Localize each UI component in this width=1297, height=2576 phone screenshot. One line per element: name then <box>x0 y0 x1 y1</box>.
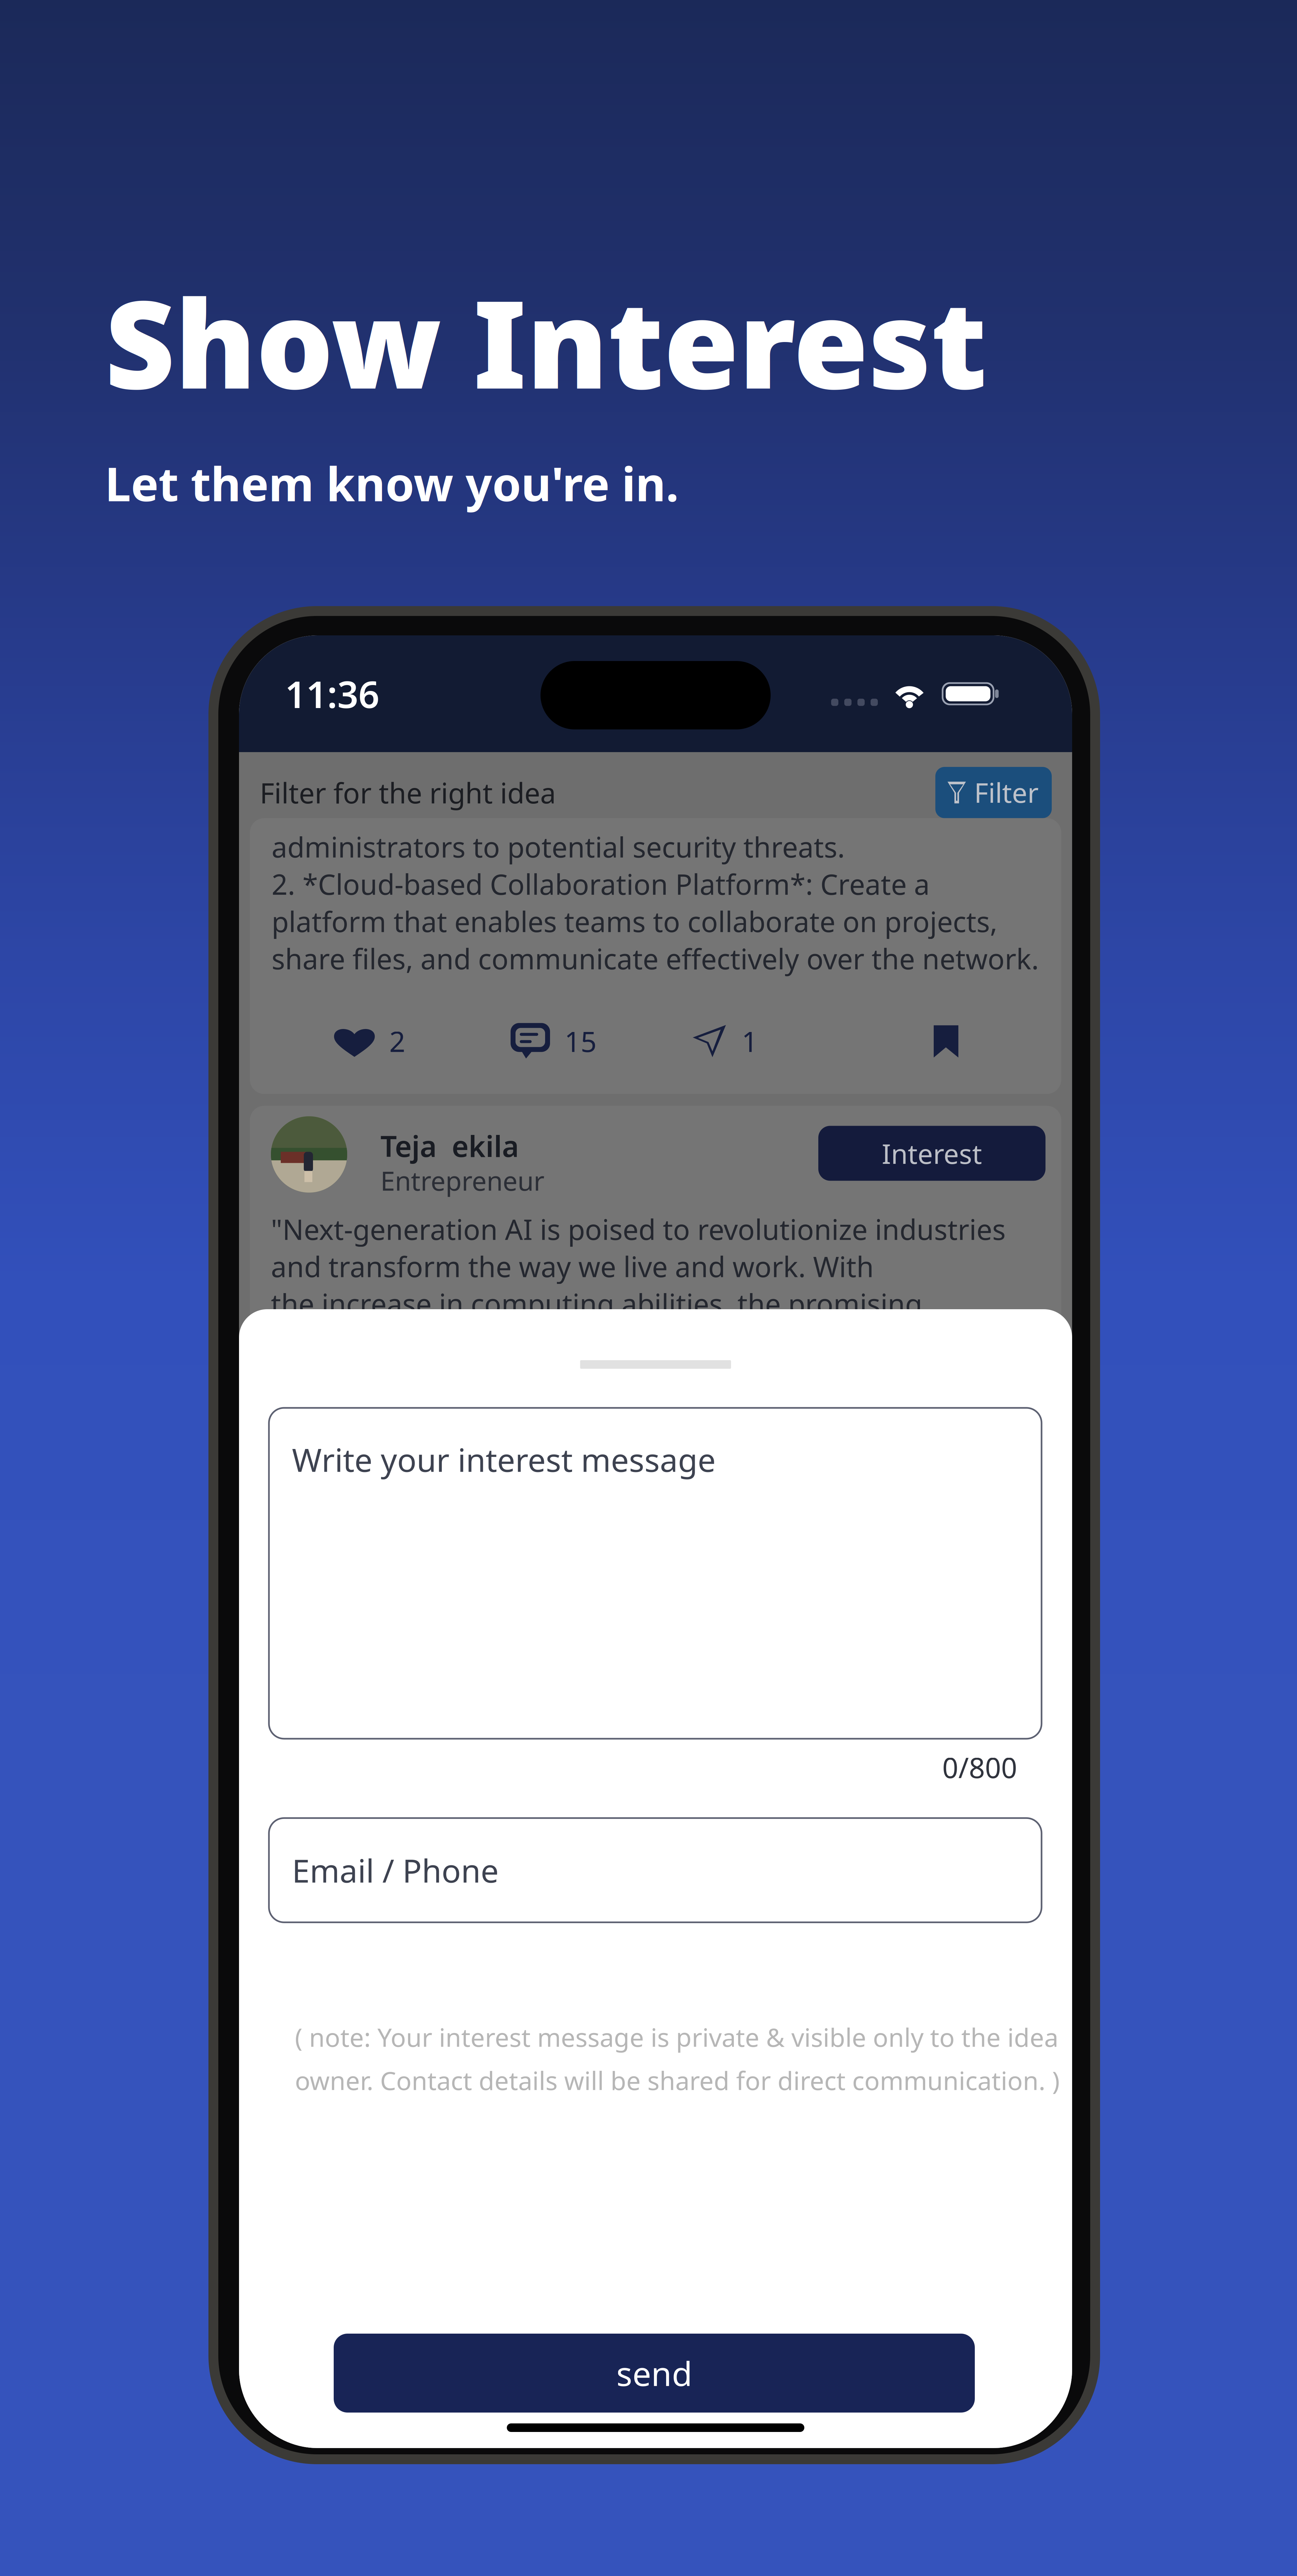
button[interactable]: 15 <box>511 1022 597 1060</box>
staticText: Write your interest message <box>292 1438 716 1481</box>
staticText: administrators to potential security thr… <box>272 828 1039 977</box>
button[interactable]: Write your interest message <box>269 1408 1042 1739</box>
button[interactable]: Email / Phone <box>269 1818 1042 1922</box>
staticText: 2 <box>389 1022 405 1060</box>
staticText: Teja ekila <box>380 1126 519 1165</box>
staticText: 15 <box>564 1022 597 1060</box>
button[interactable]: Interest <box>818 1126 1045 1181</box>
staticText: ( note: Your interest message is private… <box>295 2020 1058 2054</box>
staticText: send <box>616 2351 692 2395</box>
staticText: Interest <box>882 1135 982 1171</box>
staticText: Filter <box>974 774 1039 810</box>
staticText: 11:36 <box>285 669 379 718</box>
button[interactable]: Filter <box>935 767 1052 818</box>
staticText: owner. Contact details will be shared fo… <box>295 2063 1060 2097</box>
staticText: Email / Phone <box>292 1849 499 1891</box>
staticText: Entrepreneur <box>380 1163 544 1198</box>
staticText: Show Interest <box>105 261 987 422</box>
staticText: "Next-generation AI is poised to revolut… <box>271 1210 1006 1322</box>
staticText: 1 <box>742 1022 758 1060</box>
button[interactable]: send <box>334 2334 975 2413</box>
staticText: Let them know you're in. <box>105 452 679 514</box>
staticText: 0/800 <box>942 1749 1017 1786</box>
staticText: Filter for the right idea <box>260 774 556 811</box>
button[interactable]: 2 <box>333 1022 405 1060</box>
button[interactable]: 1 <box>691 1022 758 1060</box>
button[interactable]: Bookmark <box>932 1023 960 1059</box>
